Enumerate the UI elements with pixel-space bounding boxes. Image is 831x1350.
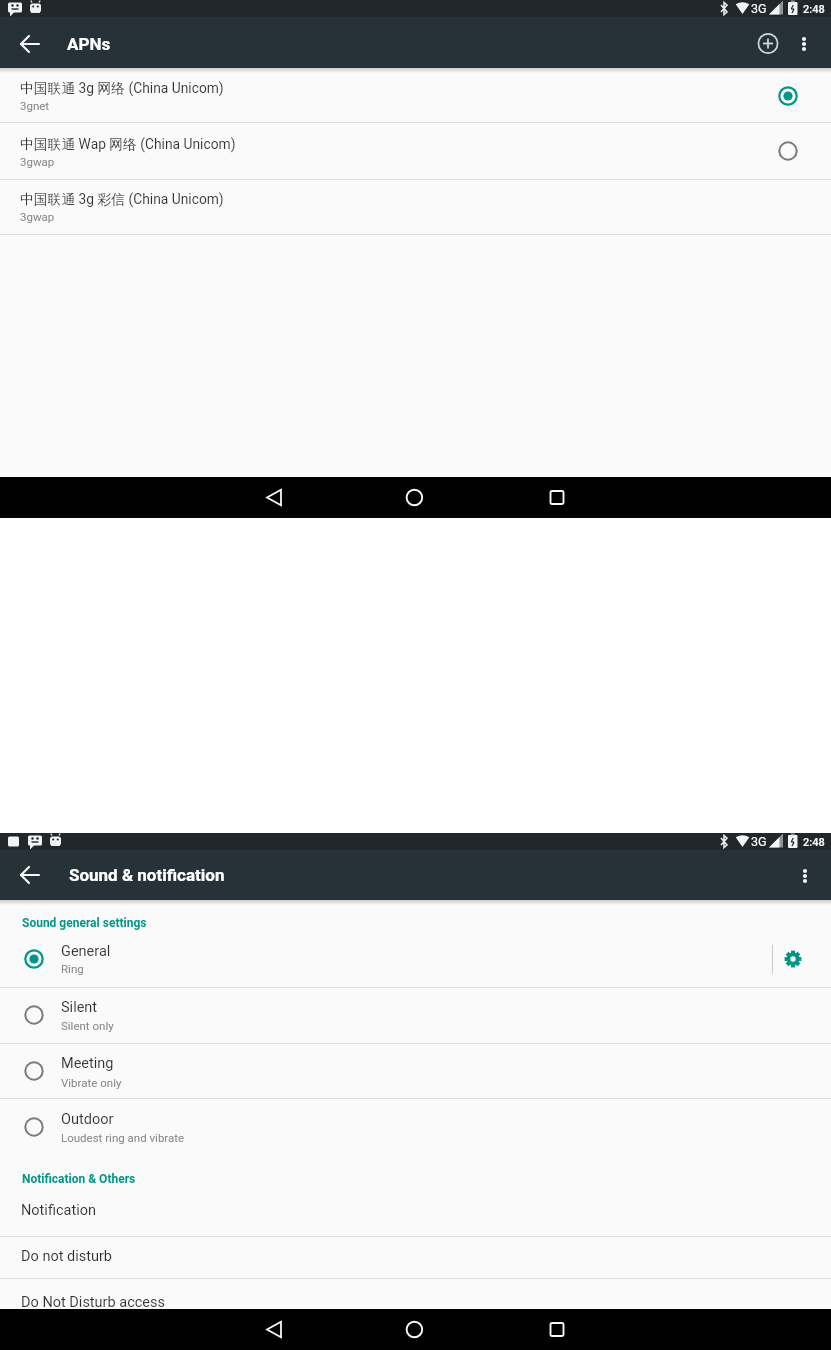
staticText: Vibrate only bbox=[61, 1076, 122, 1089]
staticText: 2:48 bbox=[803, 3, 825, 16]
staticText: Sound general settings bbox=[22, 916, 147, 930]
button[interactable] bbox=[10, 24, 50, 64]
button[interactable] bbox=[0, 179, 831, 234]
button[interactable] bbox=[0, 1043, 831, 1098]
staticText: 中国联通 3g 彩信 (China Unicom) bbox=[20, 191, 224, 208]
button[interactable] bbox=[18, 1055, 50, 1087]
staticText: Sound & notification bbox=[69, 865, 225, 885]
button[interactable] bbox=[18, 999, 50, 1031]
staticText: APNs bbox=[67, 34, 111, 54]
button[interactable] bbox=[0, 987, 831, 1043]
staticText: General bbox=[61, 943, 111, 960]
button[interactable] bbox=[527, 1309, 587, 1350]
button[interactable] bbox=[772, 80, 804, 112]
staticText: Silent only bbox=[61, 1019, 114, 1032]
staticText: 3gnet bbox=[20, 99, 50, 112]
button[interactable] bbox=[244, 477, 304, 518]
button[interactable] bbox=[384, 477, 444, 518]
staticText: Outdoor bbox=[61, 1111, 114, 1128]
staticText: Ring bbox=[61, 962, 84, 975]
staticText: 3G bbox=[751, 834, 767, 849]
button[interactable] bbox=[789, 858, 821, 894]
button[interactable] bbox=[10, 855, 50, 895]
button[interactable] bbox=[0, 68, 831, 122]
staticText: 3gwap bbox=[20, 210, 55, 223]
staticText: 3gwap bbox=[20, 155, 55, 168]
staticText: Meeting bbox=[61, 1055, 114, 1072]
button[interactable] bbox=[0, 122, 831, 179]
staticText: Silent bbox=[61, 999, 98, 1016]
button[interactable] bbox=[18, 943, 50, 975]
staticText: Notification bbox=[21, 1202, 96, 1219]
staticText: 中国联通 3g 网络 (China Unicom) bbox=[20, 80, 224, 97]
staticText: Notification & Others bbox=[22, 1172, 136, 1186]
button[interactable] bbox=[0, 1098, 831, 1154]
button[interactable] bbox=[748, 24, 788, 64]
button[interactable] bbox=[0, 1194, 831, 1236]
staticText: 中国联通 Wap 网络 (China Unicom) bbox=[20, 136, 236, 153]
button[interactable] bbox=[0, 934, 831, 987]
button[interactable] bbox=[0, 1236, 831, 1278]
button[interactable] bbox=[18, 1111, 50, 1143]
button[interactable] bbox=[244, 1309, 304, 1350]
staticText: Do not disturb bbox=[21, 1248, 112, 1265]
staticText: Do Not Disturb access bbox=[21, 1294, 165, 1311]
button[interactable] bbox=[788, 26, 820, 62]
button[interactable] bbox=[0, 1278, 831, 1309]
button[interactable] bbox=[384, 1309, 444, 1350]
staticText: 3G bbox=[751, 1, 767, 16]
button[interactable] bbox=[773, 939, 813, 979]
button[interactable] bbox=[772, 135, 804, 167]
staticText: 2:48 bbox=[803, 836, 825, 849]
button[interactable] bbox=[527, 477, 587, 518]
staticText: Loudest ring and vibrate bbox=[61, 1131, 185, 1144]
